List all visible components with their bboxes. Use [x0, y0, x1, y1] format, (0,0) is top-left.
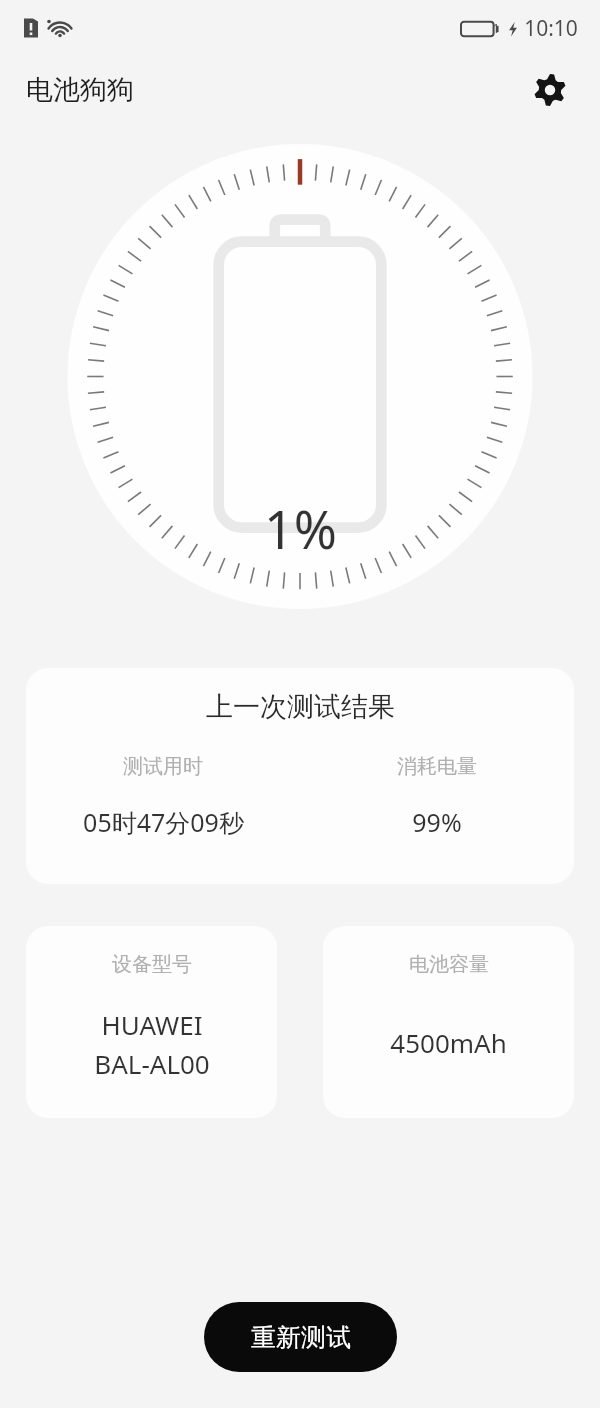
staticText: 测试用时 [123, 754, 203, 779]
staticText: 重新测试 [251, 1322, 351, 1353]
staticText: 4500mAh [390, 1025, 507, 1060]
staticText: 99% [412, 805, 462, 839]
button[interactable]: 设备型号 [26, 926, 277, 1118]
button[interactable]: 重新测试 [204, 1302, 397, 1372]
staticText: 消耗电量 [397, 754, 477, 779]
staticText: 电池狗狗 [26, 73, 134, 107]
staticText: 电池容量 [409, 952, 489, 977]
button[interactable]: 电池容量 [323, 926, 574, 1118]
staticText: 1 [492, 19, 500, 37]
staticText: BAL-AL00 [94, 1046, 210, 1081]
button[interactable]: Settings [526, 66, 574, 114]
staticText: 05时47分09秒 [83, 805, 244, 839]
staticText: 10:10 [524, 14, 578, 43]
staticText: 设备型号 [112, 952, 192, 977]
button[interactable]: 上一次测试结果 [26, 668, 574, 884]
staticText: 上一次测试结果 [206, 690, 395, 724]
staticText: 1% [264, 493, 337, 564]
staticText: HUAWEI [101, 1007, 203, 1042]
